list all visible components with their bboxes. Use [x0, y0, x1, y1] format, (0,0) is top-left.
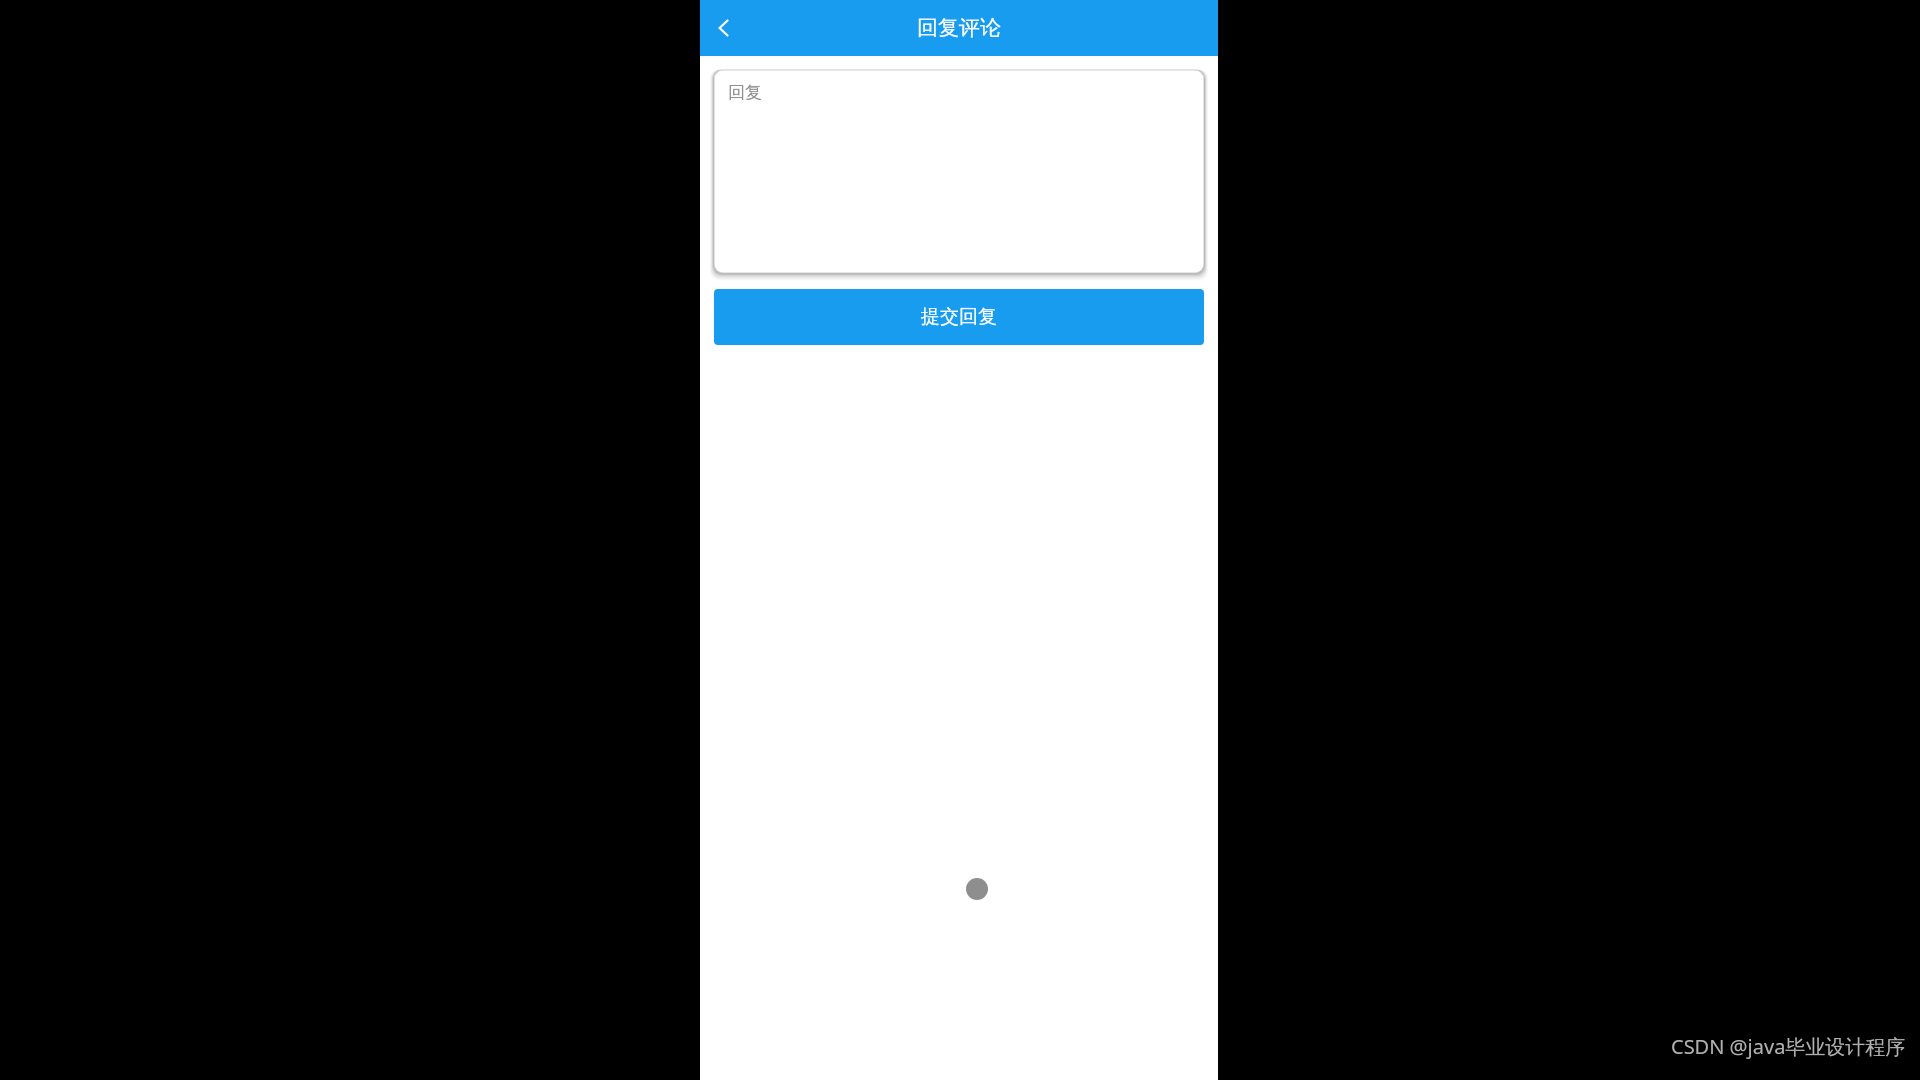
staticText: 回复评论 [917, 15, 1001, 41]
staticText: CSDN @java毕业设计程序 [1671, 1033, 1906, 1060]
staticText: 回复 [728, 82, 762, 103]
staticText: 提交回复 [921, 305, 997, 329]
button[interactable]: 提交回复 [714, 289, 1204, 345]
button[interactable]: 回复 [714, 70, 1204, 273]
button[interactable]: Back [700, 4, 748, 52]
